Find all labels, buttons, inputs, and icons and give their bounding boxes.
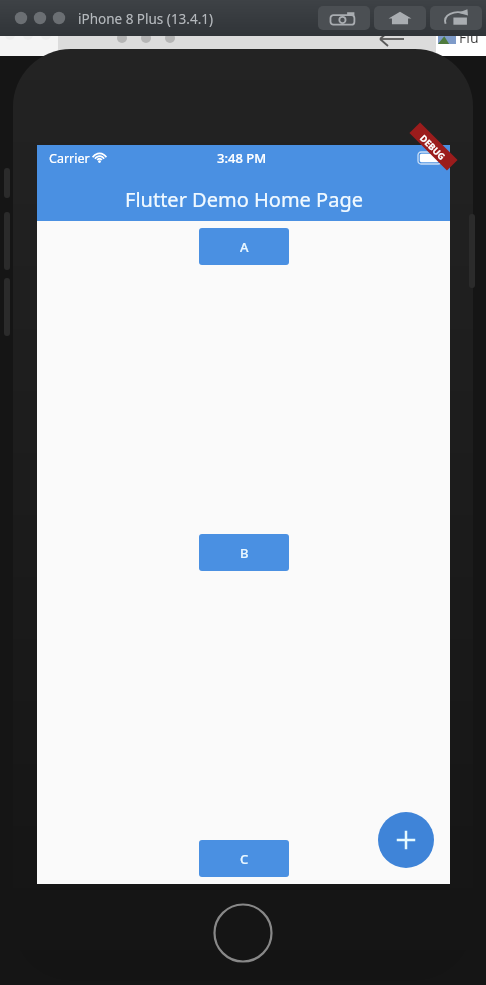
- staticText: Flutter Demo Home Page: [125, 186, 363, 213]
- button[interactable]: Home: [374, 6, 426, 30]
- staticText: DEBUG: [418, 132, 448, 162]
- button[interactable]: B: [199, 534, 289, 571]
- staticText: 3:48 PM: [217, 149, 267, 167]
- button[interactable]: C: [199, 840, 289, 877]
- staticText: A: [240, 238, 249, 256]
- staticText: Carrier: [49, 150, 90, 167]
- staticText: C: [240, 850, 249, 868]
- button[interactable]: Add: [378, 812, 434, 868]
- button[interactable]: Rotate: [430, 6, 482, 30]
- button[interactable]: A: [199, 228, 289, 265]
- button[interactable]: Screenshot: [318, 6, 370, 30]
- staticText: B: [240, 544, 249, 562]
- staticText: iPhone 8 Plus (13.4.1): [78, 10, 214, 28]
- staticText: Flu: [459, 28, 479, 47]
